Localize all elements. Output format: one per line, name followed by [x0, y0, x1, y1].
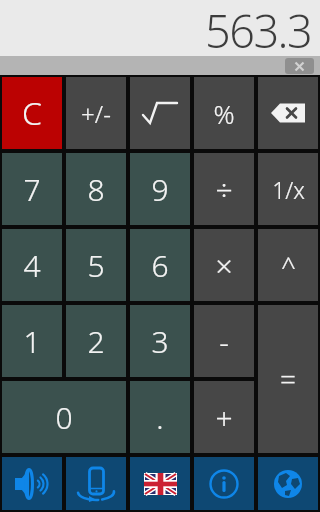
staticText: ^ [281, 248, 296, 283]
staticText: × [215, 245, 233, 286]
staticText: 1/x [272, 174, 305, 205]
staticText: 9 [151, 169, 169, 210]
staticText: 0 [55, 397, 73, 438]
staticText: 1 [23, 321, 41, 362]
staticText: 6 [151, 245, 169, 286]
staticText: C [22, 91, 42, 135]
staticText: + [215, 397, 233, 438]
staticText: 4 [23, 245, 41, 286]
staticText: 3 [151, 321, 169, 362]
staticText: 2 [87, 321, 105, 362]
staticText: 8 [87, 169, 105, 210]
staticText: - [219, 321, 229, 362]
staticText: . [156, 397, 164, 438]
staticText: 5 [87, 245, 105, 286]
staticText: ÷ [215, 169, 233, 210]
staticText: +/- [81, 97, 111, 130]
staticText: 563.3 [205, 0, 312, 56]
staticText: 7 [23, 169, 41, 210]
staticText: % [213, 96, 235, 131]
staticText: = [280, 360, 296, 398]
